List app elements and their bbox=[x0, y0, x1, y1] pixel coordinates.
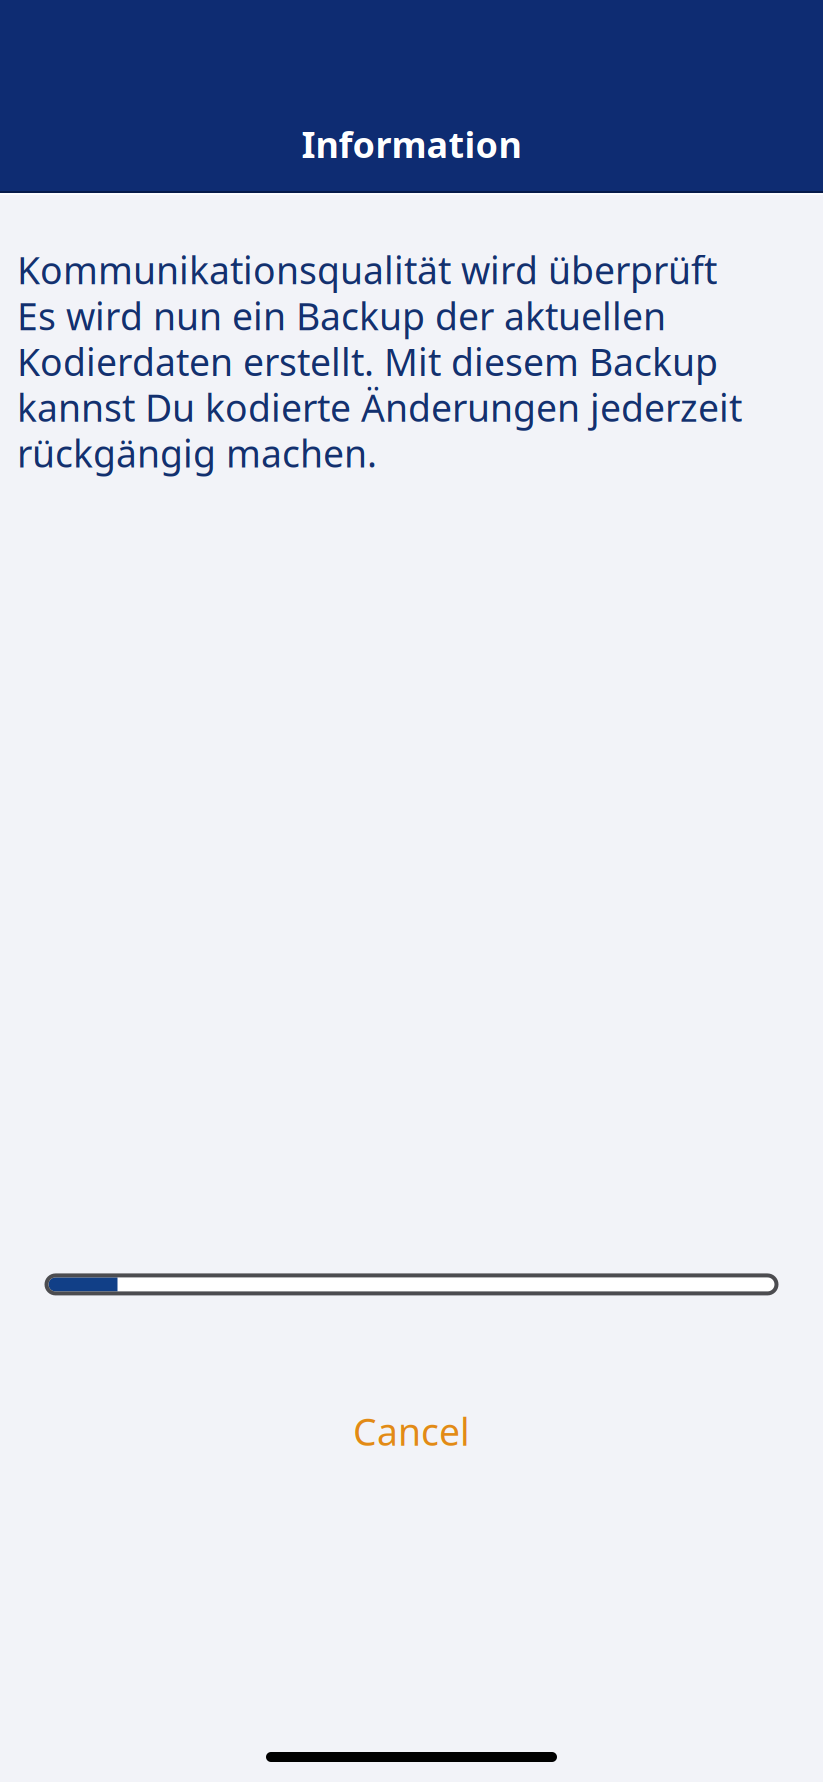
button[interactable]: Cancel bbox=[313, 1394, 510, 1468]
staticText: Information bbox=[301, 120, 521, 168]
staticText: Cancel bbox=[353, 1406, 470, 1456]
staticText: Kommunikationsqualität wird überprüft Es… bbox=[17, 247, 742, 476]
